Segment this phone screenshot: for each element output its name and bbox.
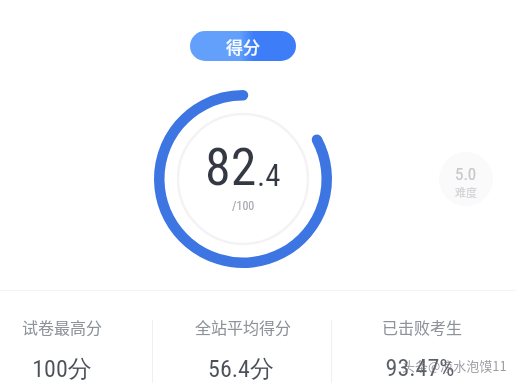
button[interactable]: 试卷最高分 bbox=[0, 291, 152, 383]
button[interactable]: 已击败考生 bbox=[332, 291, 516, 383]
button[interactable]: 全站平均得分 bbox=[153, 291, 331, 383]
staticText: 82 bbox=[205, 137, 257, 198]
staticText: 5.0 bbox=[455, 164, 477, 184]
staticText: 全站平均得分 bbox=[154, 315, 332, 338]
staticText: 难度 bbox=[455, 184, 477, 200]
staticText: 93.47% bbox=[328, 354, 512, 382]
staticText: /100 bbox=[232, 199, 255, 213]
button[interactable]: 得分 bbox=[190, 31, 296, 61]
staticText: 试卷最高分 bbox=[0, 315, 138, 338]
staticText: 头条@凉水泡馍11 bbox=[402, 356, 507, 375]
staticText: 100分 bbox=[0, 354, 138, 383]
button[interactable]: 难度 bbox=[439, 152, 493, 206]
staticText: 56.4分 bbox=[152, 354, 330, 383]
staticText: 已击败考生 bbox=[330, 315, 514, 338]
staticText: 得分 bbox=[226, 34, 260, 59]
staticText: .4 bbox=[257, 157, 281, 193]
